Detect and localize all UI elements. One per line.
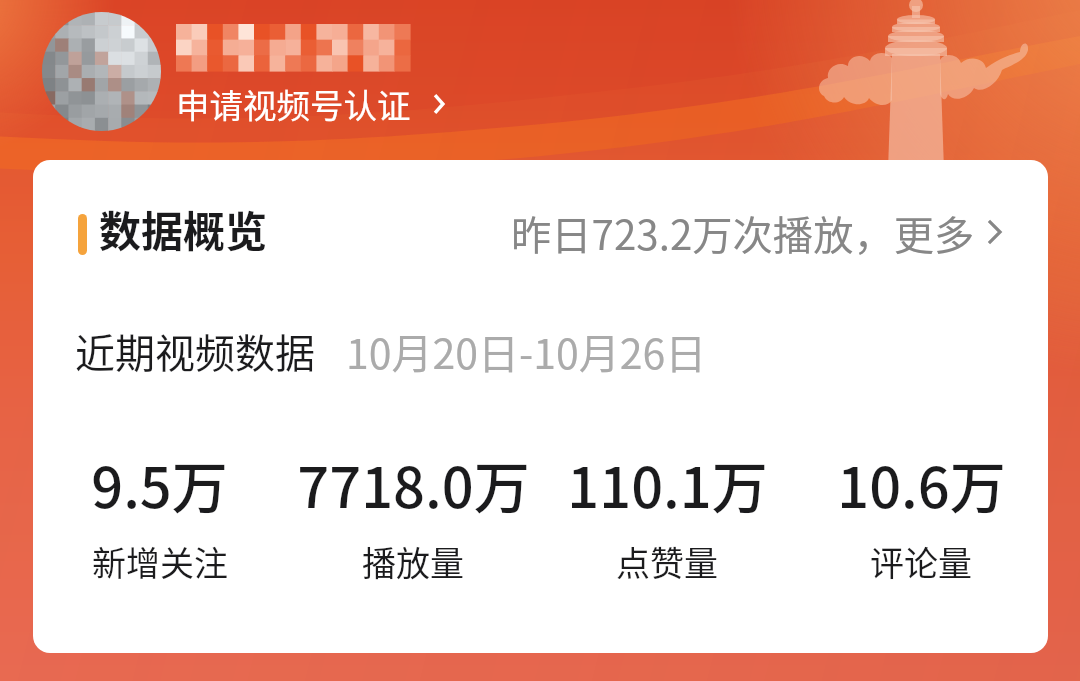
button[interactable]: 7718.0万	[286, 443, 540, 586]
button[interactable]: 昨日723.2万次播放，更多	[511, 203, 1002, 261]
button[interactable]: 110.1万	[540, 443, 794, 586]
staticText: 申请视频号认证	[176, 79, 411, 128]
staticText: 10.6万	[837, 443, 1006, 524]
staticText: 评论量	[870, 537, 972, 586]
button[interactable]: 申请视频号认证	[176, 79, 445, 128]
staticText: 数据概览	[99, 198, 268, 259]
staticText: 播放量	[362, 537, 464, 586]
staticText: 10月20日-10月26日	[346, 321, 707, 380]
staticText: 新增关注	[92, 537, 228, 586]
staticText: 110.1万	[567, 443, 768, 524]
staticText: 近期视频数据	[75, 322, 315, 380]
button[interactable]: 9.5万	[33, 443, 286, 586]
staticText: 点赞量	[616, 537, 718, 586]
staticText: 9.5万	[91, 443, 228, 524]
button[interactable]: Profile avatar	[42, 12, 161, 131]
staticText: 昨日723.2万次播放，更多	[511, 203, 975, 261]
button[interactable]: 10.6万	[794, 443, 1048, 586]
staticText: 7718.0万	[297, 443, 530, 524]
